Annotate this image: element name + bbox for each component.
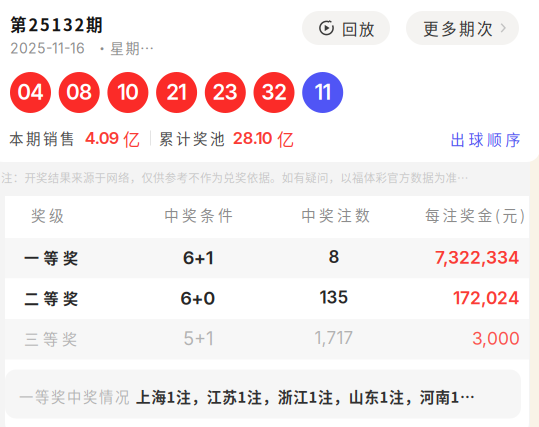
staticText: 2025-11-16 xyxy=(10,40,85,57)
staticText: 135 xyxy=(319,287,348,308)
staticText: · xyxy=(95,37,109,57)
staticText: 上海1注，江苏1注，浙江1注，山东1注，河南1… xyxy=(129,385,475,407)
staticText: 08 xyxy=(66,79,92,105)
staticText: 中奖条件 xyxy=(164,204,233,225)
staticText: 172,024 xyxy=(453,287,520,308)
staticText: 二等奖 xyxy=(24,287,78,309)
staticText: 04 xyxy=(17,79,43,105)
button[interactable]: 更多期次 xyxy=(406,11,519,45)
staticText: 回放 xyxy=(342,17,374,39)
button[interactable]: 一等奖中奖情况 xyxy=(5,369,521,418)
staticText: 出球顺序 xyxy=(450,128,520,149)
button[interactable]: 回放 xyxy=(302,11,390,45)
staticText: 三等奖 xyxy=(24,327,77,349)
staticText: 6+0 xyxy=(180,287,215,309)
staticText: 11 xyxy=(315,79,331,105)
staticText: 一等奖中奖情况 xyxy=(19,386,129,407)
staticText: 3,000 xyxy=(472,328,520,349)
staticText: 亿 xyxy=(277,126,294,151)
button[interactable]: 出球顺序 xyxy=(450,128,520,149)
staticText: 注：开奖结果来源于网络，仅供参考不作为兑奖依据。如有疑问，以福体彩官方数据为准。 xyxy=(1,169,468,185)
staticText: 奖级 xyxy=(31,204,64,226)
staticText: 8 xyxy=(328,247,339,267)
staticText: 10 xyxy=(117,79,138,105)
staticText: 4.09 xyxy=(85,128,119,148)
staticText: 1,717 xyxy=(314,328,353,348)
staticText: 本期销售 xyxy=(9,127,75,148)
staticText: 累计奖池 xyxy=(159,127,225,148)
staticText: 28.10 xyxy=(233,128,272,148)
staticText: 星期日 xyxy=(110,37,155,57)
staticText: 23 xyxy=(213,79,238,105)
staticText: 更多期次 xyxy=(423,17,493,39)
staticText: 第25132期 xyxy=(10,12,103,36)
staticText: 21 xyxy=(167,79,187,105)
staticText: 每注奖金(元) xyxy=(425,204,525,225)
staticText: 7,322,334 xyxy=(435,247,520,268)
staticText: 6+1 xyxy=(183,247,213,269)
staticText: 32 xyxy=(261,79,286,105)
staticText: 5+1 xyxy=(183,328,213,350)
staticText: 一等奖 xyxy=(24,246,78,268)
staticText: 亿 xyxy=(123,126,140,151)
staticText: 中奖注数 xyxy=(301,204,370,225)
